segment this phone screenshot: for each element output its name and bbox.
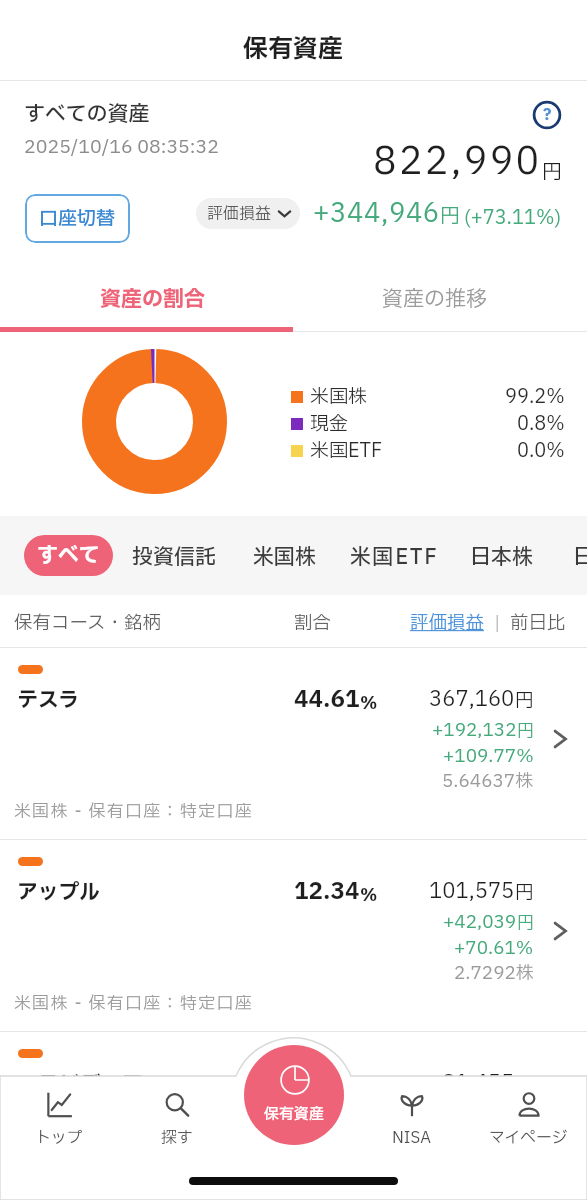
- staticText: 割合: [294, 609, 332, 637]
- button[interactable]: アップル: [0, 840, 587, 1031]
- button[interactable]: エヌビディア: [0, 1032, 587, 1200]
- staticText: 5.64637株: [442, 768, 534, 795]
- staticText: 101,575: [429, 876, 515, 907]
- staticText: 円: [515, 687, 534, 715]
- staticText: %: [345, 1075, 363, 1100]
- staticText: 日本株: [470, 542, 533, 573]
- staticText: %: [360, 691, 378, 716]
- staticText: (+73.11%): [464, 204, 562, 232]
- button[interactable]: 資産の割合: [0, 262, 293, 332]
- staticText: 0.8%: [517, 410, 565, 438]
- staticText: NISA: [392, 1126, 432, 1150]
- staticText: すべての資産: [24, 99, 150, 130]
- button[interactable]: マイページ: [470, 1035, 587, 1152]
- button[interactable]: 米国株: [253, 542, 316, 573]
- staticText: +30.61%: [454, 1127, 534, 1154]
- staticText: 円: [515, 879, 534, 907]
- staticText: +192,132: [432, 717, 517, 744]
- staticText: 現金: [310, 410, 349, 438]
- button[interactable]: テスラ: [0, 648, 587, 839]
- button[interactable]: すべて: [24, 535, 113, 576]
- staticText: 円: [517, 1103, 534, 1128]
- staticText: 口座切替: [39, 205, 116, 233]
- staticText: 822,990: [373, 134, 542, 190]
- staticText: +42,039: [443, 909, 517, 936]
- staticText: +109.77%: [443, 743, 534, 770]
- button[interactable]: NISA: [353, 1035, 470, 1152]
- staticText: 0.0%: [517, 437, 565, 465]
- button[interactable]: 前日比: [510, 609, 566, 637]
- button[interactable]: 口座切替: [25, 194, 130, 243]
- staticText: 2.7292株: [454, 960, 534, 987]
- button[interactable]: 保有資産: [244, 1045, 344, 1145]
- staticText: エヌビディア: [17, 1069, 143, 1100]
- staticText: %: [360, 883, 378, 908]
- staticText: 探す: [161, 1126, 194, 1150]
- staticText: 米国株 - 保有口座：特定口座: [14, 1183, 254, 1200]
- button[interactable]: 日本株: [470, 542, 533, 573]
- staticText: 円: [515, 1071, 534, 1099]
- staticText: 保有資産: [243, 31, 344, 68]
- staticText: 投資信託: [132, 542, 216, 573]
- staticText: テスラ: [17, 685, 80, 716]
- button[interactable]: 評価損益: [196, 198, 300, 229]
- staticText: マイページ: [489, 1126, 568, 1150]
- staticText: 12.34: [294, 875, 360, 909]
- staticText: 44.61: [294, 683, 360, 717]
- staticText: 米国株 - 保有口座：特定口座: [14, 991, 254, 1016]
- button[interactable]: 日: [573, 542, 587, 573]
- staticText: 9.99: [294, 1067, 345, 1101]
- staticText: すべて: [37, 540, 100, 571]
- staticText: トップ: [35, 1126, 83, 1150]
- button[interactable]: 探す: [118, 1035, 236, 1152]
- staticText: 資産の推移: [382, 284, 487, 315]
- staticText: 円: [517, 911, 534, 936]
- button[interactable]: 評価損益: [410, 609, 485, 637]
- staticText: 保有コース・銘柄: [14, 609, 162, 637]
- staticText: 米国株: [253, 542, 316, 573]
- button[interactable]: ヘルプ: [532, 100, 562, 130]
- staticText: 99.2%: [505, 383, 565, 411]
- staticText: 日: [573, 542, 587, 573]
- button[interactable]: 資産の推移: [293, 262, 587, 332]
- staticText: 米国ETF: [350, 542, 439, 573]
- staticText: 円: [440, 202, 460, 232]
- staticText: 保有資産: [264, 1103, 325, 1125]
- staticText: 円: [517, 719, 534, 744]
- staticText: 資産の割合: [100, 284, 205, 315]
- staticText: ?: [543, 103, 552, 127]
- button[interactable]: 米国ETF: [350, 542, 439, 573]
- staticText: アップル: [17, 877, 100, 908]
- staticText: 2025/10/16 08:35:32: [24, 133, 219, 161]
- staticText: 米国ETF: [310, 437, 383, 465]
- staticText: +70.61%: [454, 935, 534, 962]
- staticText: 米国株: [310, 383, 368, 411]
- staticText: 米国株 - 保有口座：特定口座: [14, 799, 254, 824]
- button[interactable]: 投資信託: [132, 542, 216, 573]
- staticText: |: [485, 609, 510, 637]
- staticText: 367,160: [429, 684, 515, 715]
- button[interactable]: トップ: [0, 1035, 118, 1152]
- staticText: 評価損益: [207, 202, 272, 226]
- staticText: +344,946: [313, 194, 440, 233]
- staticText: 81,455: [442, 1068, 515, 1099]
- staticText: 円: [542, 158, 562, 188]
